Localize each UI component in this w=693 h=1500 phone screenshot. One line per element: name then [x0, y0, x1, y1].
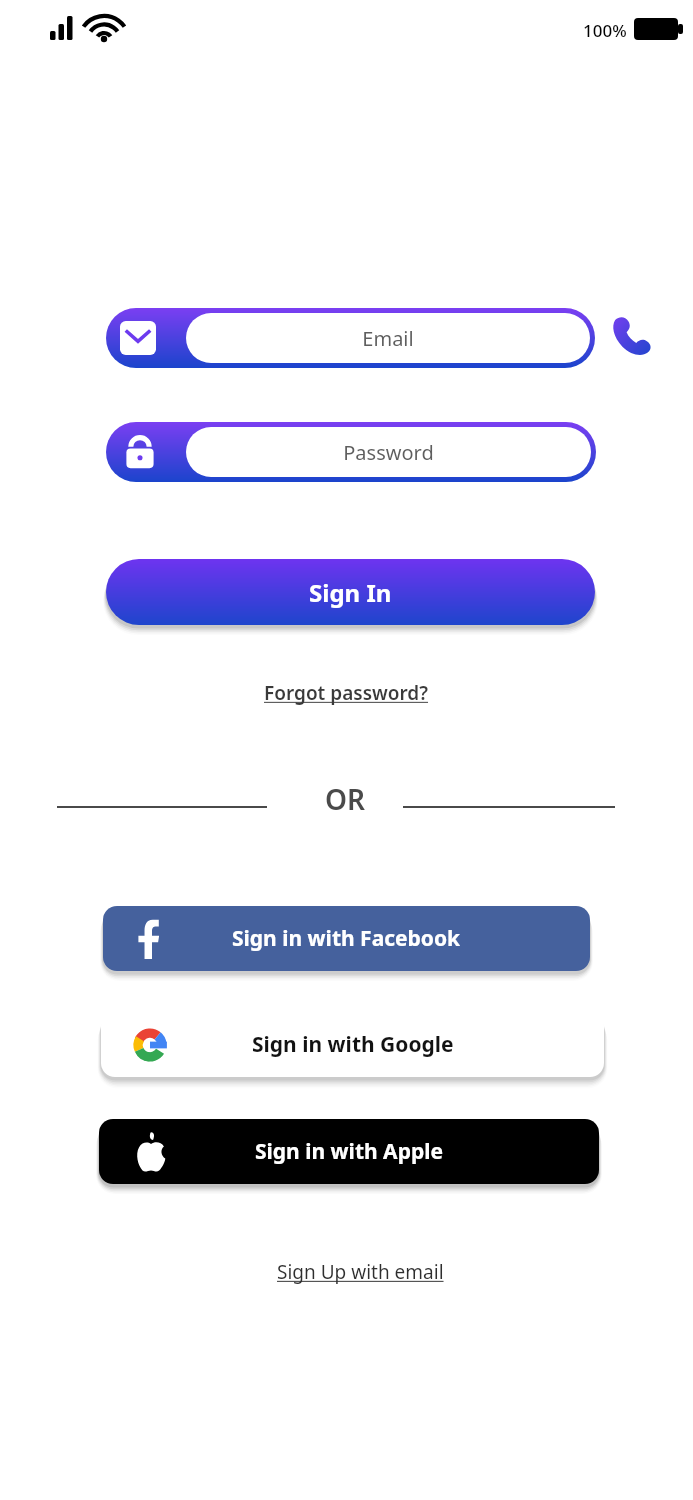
staticText: Password: [343, 439, 434, 466]
button[interactable]: Sign in with Facebook: [103, 906, 590, 971]
staticText: Sign in with Google: [252, 1030, 454, 1059]
staticText: Sign Up with email: [277, 1259, 444, 1285]
staticText: Sign in with Facebook: [232, 924, 461, 953]
staticText: 100%: [583, 19, 627, 42]
staticText: Forgot password?: [264, 680, 429, 706]
button[interactable]: Email: [106, 308, 595, 368]
button[interactable]: Sign in with Apple: [99, 1119, 599, 1184]
button[interactable]: Sign in with Google: [101, 1012, 604, 1077]
staticText: Sign In: [309, 576, 392, 609]
staticText: Email: [362, 325, 414, 352]
button[interactable]: Password: [106, 422, 596, 482]
staticText: OR: [325, 780, 366, 818]
button[interactable]: Sign in with phone: [609, 313, 653, 357]
button[interactable]: Forgot password?: [255, 676, 438, 710]
button[interactable]: Sign In: [106, 559, 595, 625]
button[interactable]: Sign Up with email: [262, 1255, 458, 1289]
staticText: Sign in with Apple: [255, 1137, 443, 1166]
